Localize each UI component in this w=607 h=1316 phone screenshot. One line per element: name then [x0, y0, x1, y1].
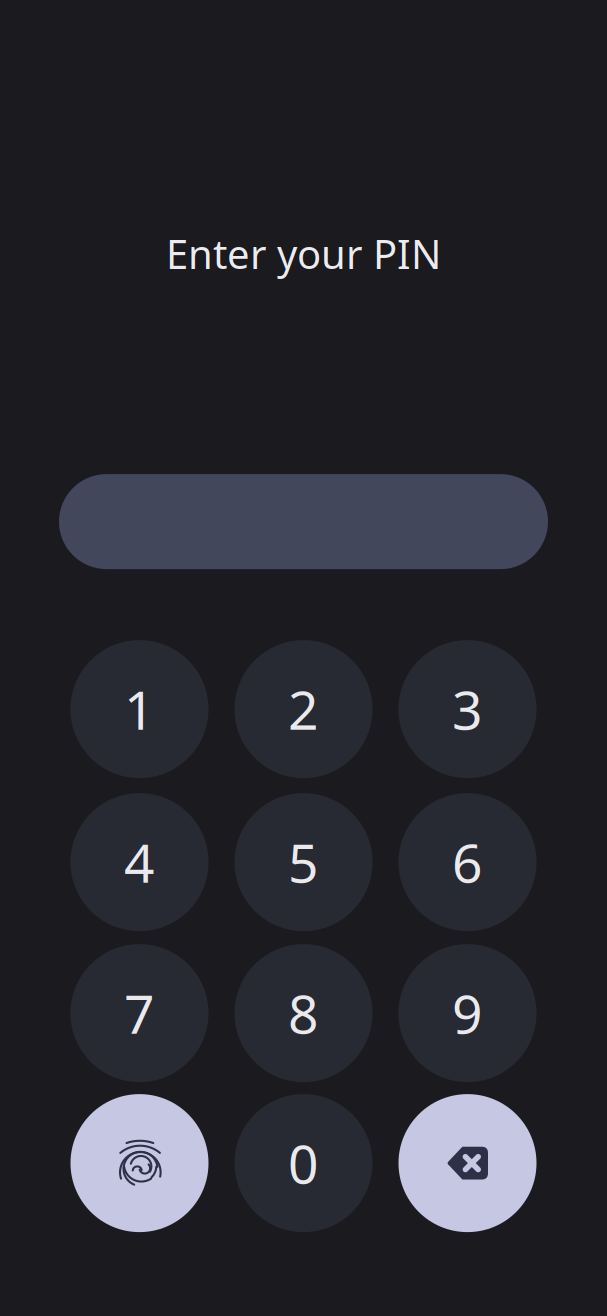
button[interactable]: Delete — [398, 1094, 536, 1232]
button[interactable]: 4 — [70, 793, 208, 931]
staticText: 8 — [288, 978, 319, 1048]
staticText: 9 — [452, 978, 483, 1048]
button[interactable]: 5 — [234, 793, 372, 931]
button[interactable]: 1 — [70, 640, 208, 778]
staticText: Enter your PIN — [166, 227, 441, 280]
button[interactable]: 9 — [398, 944, 536, 1082]
button[interactable]: 0 — [234, 1094, 372, 1232]
staticText: 5 — [288, 827, 319, 897]
staticText: 1 — [124, 674, 155, 744]
button[interactable]: Unlock with fingerprint — [70, 1094, 208, 1232]
staticText: 2 — [288, 674, 319, 744]
staticText: 3 — [452, 674, 483, 744]
button[interactable]: 7 — [70, 944, 208, 1082]
staticText: 7 — [124, 978, 155, 1048]
button[interactable]: 8 — [234, 944, 372, 1082]
button[interactable]: 2 — [234, 640, 372, 778]
button[interactable]: 3 — [398, 640, 536, 778]
button[interactable]: 6 — [398, 793, 536, 931]
staticText: 4 — [124, 827, 155, 897]
staticText: 6 — [452, 827, 483, 897]
staticText: 0 — [288, 1128, 319, 1198]
